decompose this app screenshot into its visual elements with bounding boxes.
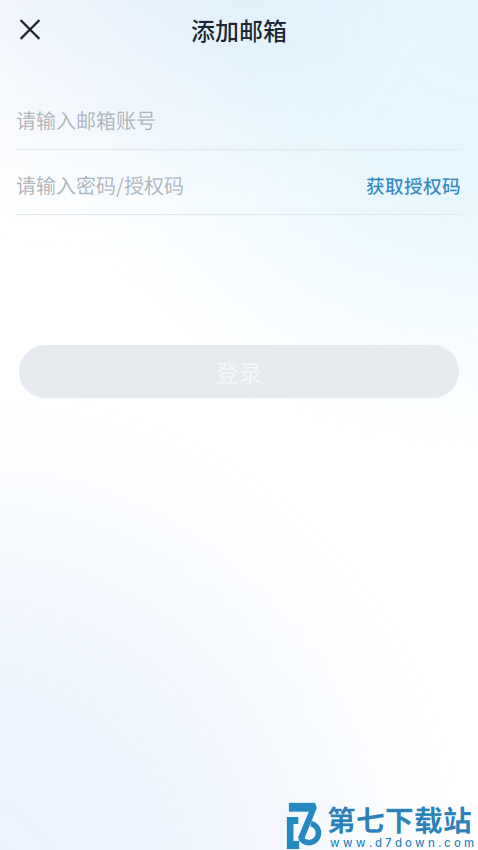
staticText: 添加邮箱 (191, 12, 287, 47)
button[interactable]: 登录 (19, 345, 459, 398)
staticText: 请输入邮箱账号 (16, 105, 156, 134)
staticText: 第七下载站 (327, 798, 472, 839)
staticText: w w w . d 7 d o w n . c o m (330, 836, 474, 850)
button[interactable]: Close (8, 7, 52, 51)
staticText: 请输入密码/授权码 (16, 170, 184, 199)
button[interactable]: 获取授权码 (366, 171, 461, 198)
staticText: 登录 (216, 355, 262, 388)
staticText: 获取授权码 (366, 171, 461, 198)
